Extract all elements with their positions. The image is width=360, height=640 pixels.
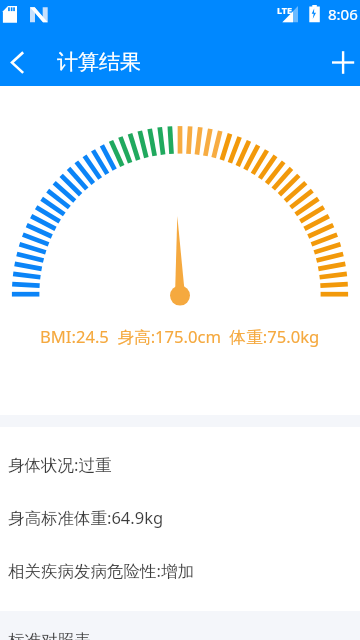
- staticText: 身高标准体重:64.9kg: [8, 506, 164, 529]
- button[interactable]: 标准对照表: [0, 630, 360, 640]
- staticText: 计算结果: [57, 49, 141, 75]
- button[interactable]: 身高标准体重:64.9kg: [0, 491, 360, 544]
- staticText: 8:06: [328, 4, 358, 24]
- staticText: 相关疾病发病危险性:增加: [8, 559, 194, 582]
- button[interactable]: 相关疾病发病危险性:增加: [0, 544, 360, 597]
- button[interactable]: 身体状况:过重: [0, 438, 360, 491]
- staticText: 身体状况:过重: [8, 453, 112, 476]
- staticText: 标准对照表: [8, 630, 91, 640]
- button[interactable]: Add: [316, 36, 360, 80]
- staticText: LTE: [277, 4, 293, 16]
- button[interactable]: Back: [0, 36, 44, 80]
- staticText: BMI:24.5 身高:175.0cm 体重:75.0kg: [40, 325, 320, 348]
